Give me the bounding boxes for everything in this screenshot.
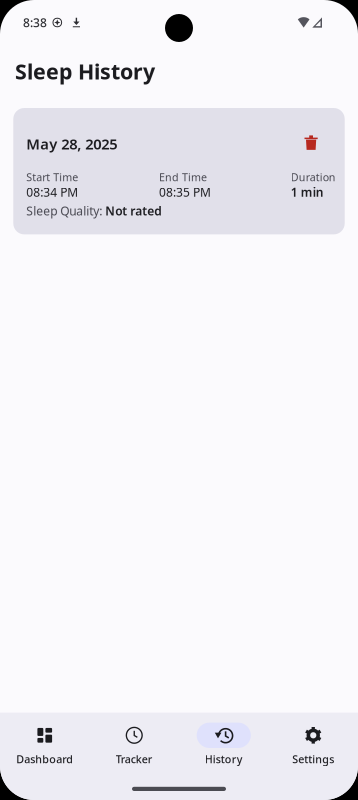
staticText: Tracker: [116, 752, 153, 766]
staticText: 08:35 PM: [159, 184, 211, 200]
staticText: Settings: [292, 752, 334, 766]
button[interactable]: Tracker: [89, 713, 179, 775]
staticText: 8:38: [23, 14, 47, 30]
button[interactable]: Dashboard: [0, 713, 89, 775]
staticText: History: [205, 752, 243, 766]
staticText: Dashboard: [16, 752, 73, 766]
staticText: 1 min: [291, 184, 324, 200]
staticText: Sleep Quality:: [26, 203, 105, 219]
button[interactable]: History: [179, 713, 268, 775]
staticText: Not rated: [105, 203, 162, 219]
button[interactable]: Settings: [268, 713, 358, 775]
staticText: May 28, 2025: [26, 134, 117, 153]
staticText: Sleep History: [15, 57, 155, 85]
staticText: 08:34 PM: [26, 184, 78, 200]
button[interactable]: Delete sleep record: [297, 130, 325, 155]
staticText: End Time: [159, 170, 207, 184]
staticText: Duration: [291, 170, 336, 184]
staticText: Start Time: [26, 170, 78, 184]
